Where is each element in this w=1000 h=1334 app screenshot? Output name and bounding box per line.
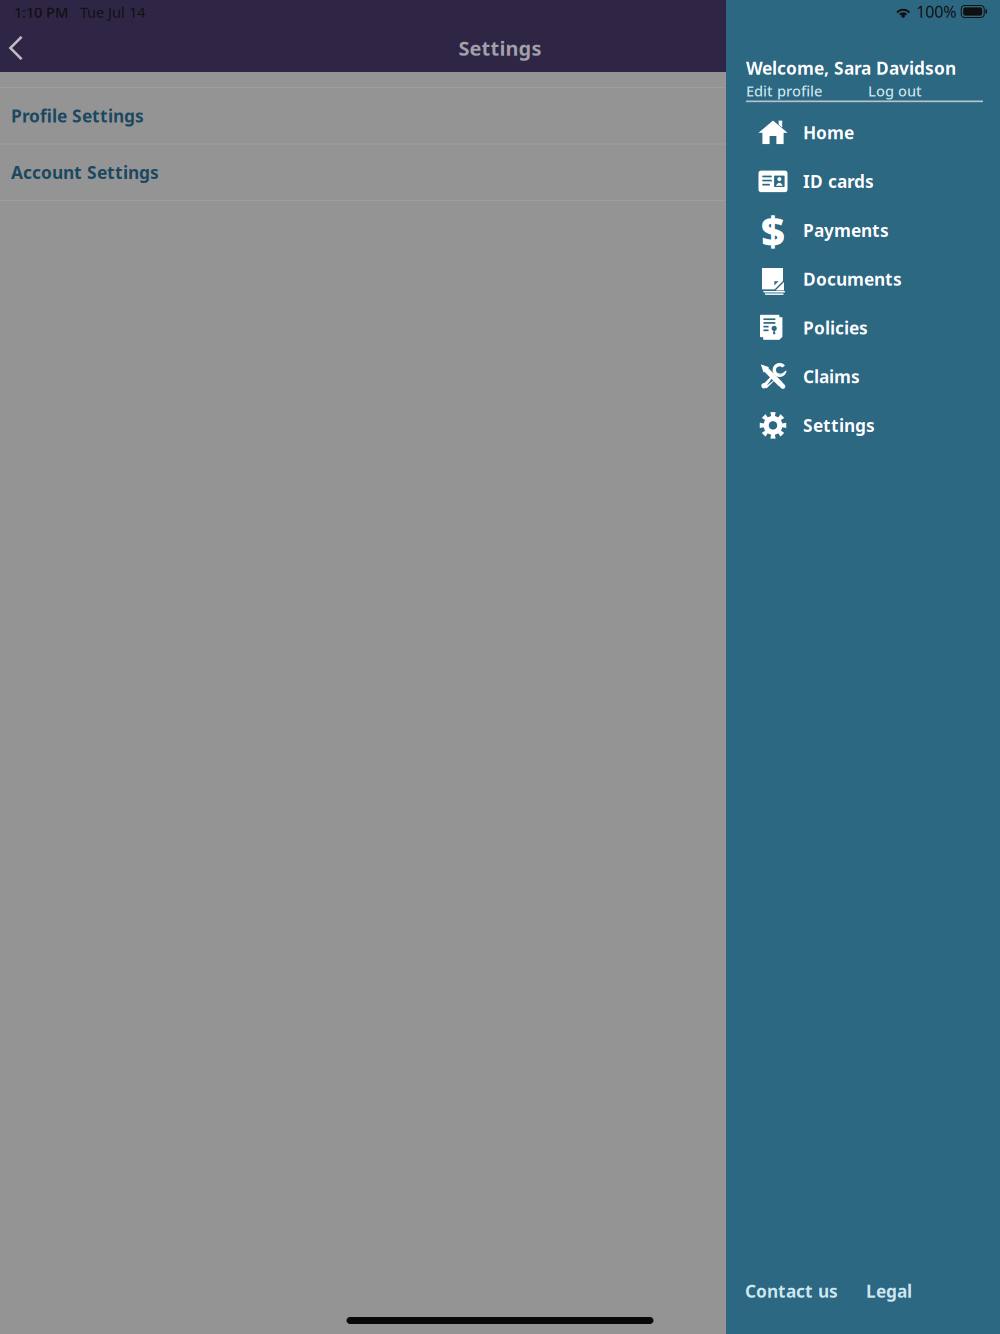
button[interactable]: Home	[726, 108, 1000, 157]
staticText: Home	[803, 121, 854, 144]
staticText: Log out	[868, 81, 922, 100]
button[interactable]: $	[726, 206, 1000, 255]
staticText: $	[761, 203, 785, 258]
staticText: Settings	[458, 35, 541, 61]
staticText: Payments	[803, 219, 889, 242]
button[interactable]: Settings	[726, 401, 1000, 450]
staticText: ID cards	[803, 170, 874, 193]
button[interactable]: Back	[0, 25, 56, 71]
staticText: Documents	[803, 267, 902, 290]
button[interactable]: Contact us	[745, 1279, 838, 1302]
button[interactable]: Edit profile	[746, 81, 822, 100]
staticText: Profile Settings	[11, 104, 144, 127]
staticText: Welcome, Sara Davidson	[746, 56, 956, 79]
staticText: Policies	[803, 316, 868, 339]
staticText: 1:10 PM	[14, 2, 68, 22]
staticText: Legal	[866, 1279, 912, 1302]
button[interactable]: Account Settings	[0, 144, 1000, 200]
staticText: Edit profile	[746, 81, 822, 100]
button[interactable]: ID cards	[726, 157, 1000, 206]
button[interactable]: Policies	[726, 303, 1000, 352]
button[interactable]: Log out	[868, 81, 922, 100]
staticText: Tue Jul 14	[68, 2, 145, 22]
staticText: Contact us	[745, 1279, 838, 1302]
staticText: 100%	[916, 1, 956, 22]
button[interactable]: Profile Settings	[0, 88, 1000, 143]
staticText: Account Settings	[11, 161, 159, 184]
button[interactable]: Legal	[866, 1279, 912, 1302]
staticText: Settings	[803, 414, 875, 437]
staticText: Claims	[803, 365, 860, 388]
button[interactable]: Claims	[726, 352, 1000, 401]
button[interactable]: Documents	[726, 255, 1000, 303]
